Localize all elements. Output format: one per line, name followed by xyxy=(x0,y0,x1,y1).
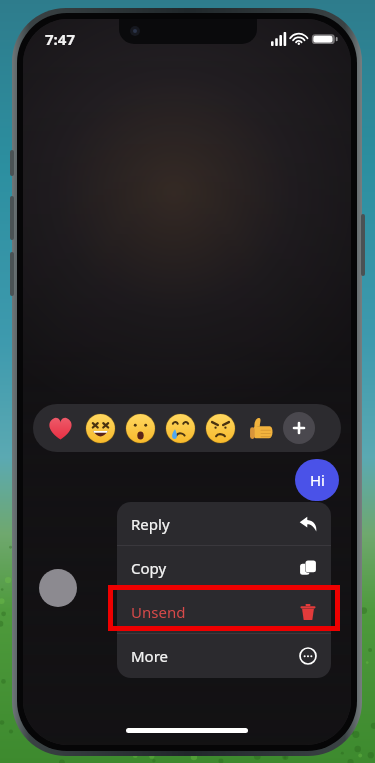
button[interactable]: Hi xyxy=(295,459,339,501)
button[interactable]: Reaction xyxy=(43,411,77,445)
staticText: Copy xyxy=(131,558,167,578)
staticText: More xyxy=(131,646,169,666)
button[interactable]: More xyxy=(117,634,331,677)
staticText: 7:47 xyxy=(45,29,75,49)
button[interactable]: More reactions xyxy=(283,412,315,444)
button[interactable]: Reaction xyxy=(203,411,237,445)
button[interactable]: Unsend xyxy=(117,590,331,633)
button[interactable]: Reply xyxy=(117,502,331,545)
button[interactable]: Reaction xyxy=(243,411,277,445)
staticText: Unsend xyxy=(131,602,186,622)
button[interactable]: Copy xyxy=(117,546,331,589)
button[interactable]: Reaction xyxy=(123,411,157,445)
button[interactable]: Reaction xyxy=(83,411,117,445)
button[interactable]: Reaction xyxy=(163,411,197,445)
staticText: Hi xyxy=(310,470,325,490)
staticText: Reply xyxy=(131,514,170,534)
